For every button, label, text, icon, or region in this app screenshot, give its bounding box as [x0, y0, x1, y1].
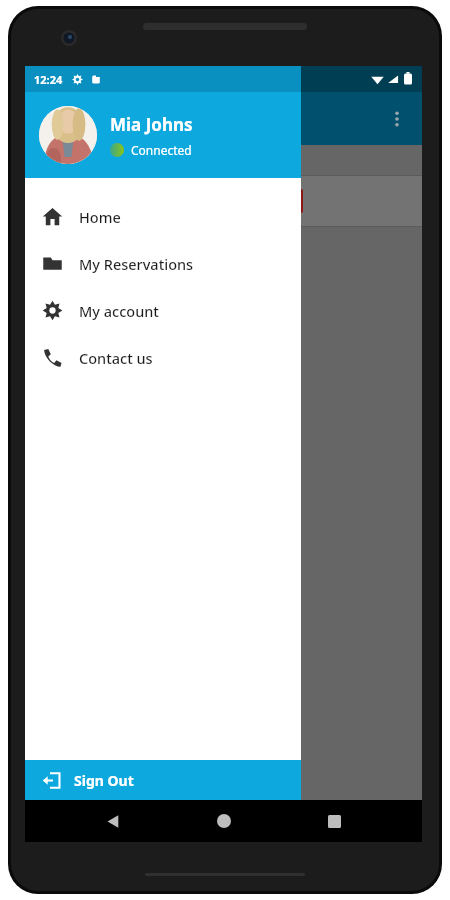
button[interactable]: Contact us: [25, 334, 301, 381]
button[interactable]: Home: [202, 800, 246, 842]
staticText: Contact us: [79, 348, 153, 368]
button[interactable]: Sign Out: [25, 760, 301, 800]
staticText: 12:24: [34, 72, 63, 87]
button[interactable]: Back: [91, 800, 135, 842]
staticText: Sign Out: [74, 771, 134, 790]
staticText: My Reservations: [79, 254, 194, 274]
staticText: Home: [79, 207, 121, 227]
button[interactable]: My account: [25, 287, 301, 334]
button[interactable]: My Reservations: [25, 240, 301, 287]
button[interactable]: Recent apps: [312, 800, 356, 842]
staticText: My account: [79, 301, 159, 321]
staticText: Mia Johns: [110, 113, 193, 136]
button[interactable]: Home: [25, 193, 301, 240]
button[interactable]: Cancel: [243, 189, 303, 213]
staticText: Connected: [131, 142, 192, 158]
button[interactable]: More options: [380, 102, 414, 136]
